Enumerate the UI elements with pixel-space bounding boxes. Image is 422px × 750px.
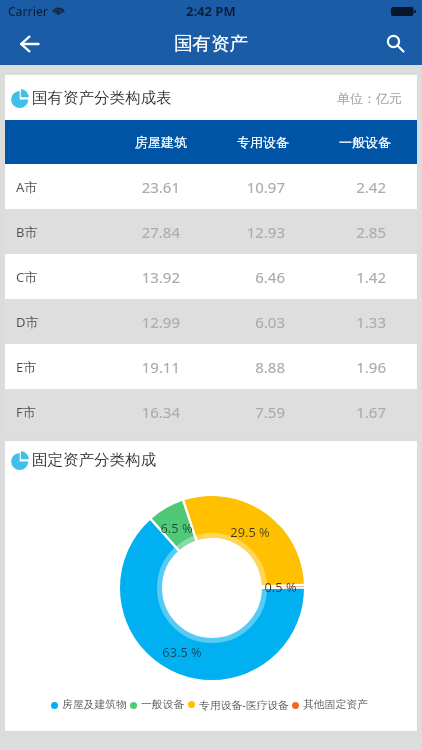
staticText: 27.84 — [141, 222, 180, 242]
button[interactable]: 房屋及建筑物 — [51, 698, 130, 712]
staticText: Carrier — [8, 3, 48, 19]
staticText: 1.96 — [356, 357, 386, 377]
staticText: 29.5 % — [230, 523, 270, 540]
staticText: 1.67 — [356, 402, 386, 422]
button[interactable]: 其他固定资产 — [292, 698, 371, 712]
staticText: 6.5 % — [160, 519, 193, 536]
staticText: 10.97 — [246, 177, 285, 197]
staticText: 8.88 — [255, 357, 285, 377]
staticText: 国有资产 — [174, 32, 248, 55]
staticText: 房屋及建筑物 — [62, 698, 127, 712]
staticText: 1.42 — [356, 267, 386, 287]
staticText: 国有资产分类构成表 — [32, 88, 172, 108]
staticText: 2.42 — [356, 177, 386, 197]
staticText: 0.5 % — [264, 578, 297, 595]
staticText: C市 — [16, 268, 38, 286]
staticText: 专用设备-医疗设备 — [199, 697, 289, 712]
staticText: F市 — [16, 403, 36, 421]
button[interactable]: Back — [11, 26, 47, 62]
button[interactable]: F市 — [5, 389, 417, 434]
staticText: 63.5 % — [162, 643, 202, 660]
staticText: 23.61 — [141, 177, 180, 197]
staticText: 2.85 — [356, 222, 386, 242]
staticText: 1.33 — [356, 312, 386, 332]
staticText: 固定资产分类构成 — [32, 450, 156, 470]
staticText: 专用设备 — [237, 134, 289, 150]
button[interactable]: 一般设备 — [130, 698, 188, 712]
staticText: 其他固定资产 — [303, 698, 368, 712]
button[interactable]: Search — [378, 26, 414, 62]
staticText: 16.34 — [141, 402, 180, 422]
staticText: B市 — [16, 223, 38, 241]
staticText: 19.11 — [141, 357, 180, 377]
staticText: 13.92 — [141, 267, 180, 287]
staticText: 2:42 PM — [186, 2, 236, 20]
staticText: 12.99 — [141, 312, 180, 332]
staticText: 一般设备 — [141, 698, 185, 712]
button[interactable]: C市 — [5, 254, 417, 299]
button[interactable]: D市 — [5, 299, 417, 344]
button[interactable]: A市 — [5, 164, 417, 209]
staticText: A市 — [16, 178, 38, 196]
button[interactable]: E市 — [5, 344, 417, 389]
staticText: 房屋建筑 — [135, 134, 187, 150]
staticText: 一般设备 — [339, 134, 391, 150]
staticText: D市 — [16, 313, 39, 331]
button[interactable]: 专用设备-医疗设备 — [188, 697, 292, 712]
staticText: E市 — [16, 358, 37, 376]
staticText: 6.46 — [255, 267, 285, 287]
staticText: 6.03 — [255, 312, 285, 332]
button[interactable]: B市 — [5, 209, 417, 254]
staticText: 7.59 — [255, 402, 285, 422]
staticText: 12.93 — [246, 222, 285, 242]
staticText: 单位：亿元 — [337, 90, 402, 106]
